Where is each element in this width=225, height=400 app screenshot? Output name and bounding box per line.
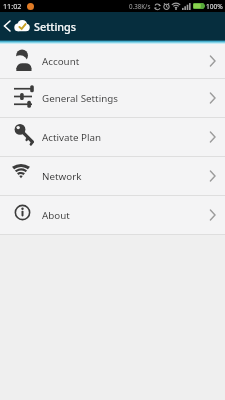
staticText: General Settings — [42, 92, 118, 105]
staticText: Activate Plan — [42, 131, 102, 144]
staticText: About — [42, 209, 70, 222]
staticText: 11:02 — [3, 1, 22, 11]
button[interactable]: Network — [0, 157, 225, 196]
staticText: Account — [42, 55, 80, 68]
button[interactable]: About — [0, 196, 225, 235]
button[interactable]: Account — [0, 44, 225, 79]
button[interactable]: Activate Plan — [0, 118, 225, 157]
staticText: Network — [42, 170, 82, 183]
staticText: 0.38K/s — [129, 2, 151, 10]
staticText: 100% — [206, 2, 223, 11]
staticText: Settings — [34, 19, 77, 34]
button[interactable] — [0, 12, 14, 40]
button[interactable]: General Settings — [0, 79, 225, 118]
